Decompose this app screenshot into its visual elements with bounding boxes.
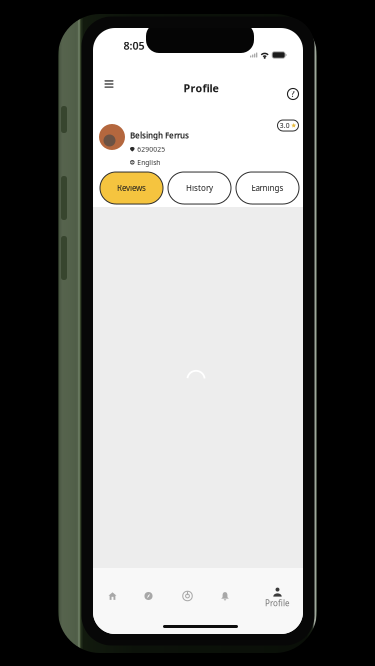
staticText: 3.0 <box>280 121 290 130</box>
button[interactable]: Earnings <box>236 172 299 204</box>
staticText: Belsingh Ferrus <box>130 130 189 141</box>
button[interactable]: Home <box>106 590 118 602</box>
staticText: 8:05 <box>123 38 144 53</box>
button[interactable]: Notifications <box>219 590 231 602</box>
staticText: ? <box>291 88 295 99</box>
staticText: History <box>186 183 213 193</box>
button[interactable]: Help <box>283 84 303 104</box>
button[interactable]: History <box>168 172 231 204</box>
staticText: Profile <box>265 598 290 608</box>
button[interactable]: Menu <box>99 74 119 94</box>
button[interactable]: Activity <box>181 590 193 602</box>
staticText: 6290025 <box>137 145 165 154</box>
staticText: Earnings <box>251 183 283 193</box>
staticText: English <box>137 158 160 167</box>
staticText: Profile <box>183 81 218 95</box>
staticText: Reviews <box>117 183 146 193</box>
button[interactable]: Explore <box>142 590 154 602</box>
button[interactable]: Profile <box>265 589 290 607</box>
button[interactable]: Reviews <box>100 172 163 204</box>
